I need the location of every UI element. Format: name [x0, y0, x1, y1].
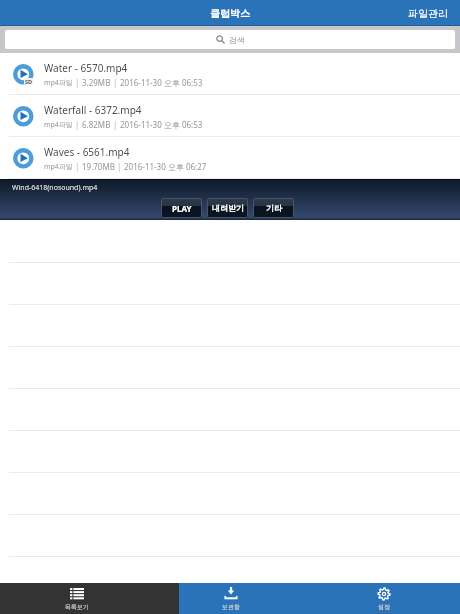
button[interactable]: 설정	[307, 583, 460, 614]
staticText: mp4파일	[44, 120, 73, 130]
staticText: |	[73, 161, 82, 172]
staticText: 목록보기	[65, 603, 89, 611]
staticText: 클럽박스	[210, 7, 250, 20]
staticText: 2016-11-30 오후 06:53	[120, 77, 203, 88]
button[interactable]: Waves - 6561.mp4	[0, 137, 460, 179]
staticText: 19.70MB	[82, 161, 115, 172]
button[interactable]: 파일관리	[396, 0, 460, 26]
staticText: 내려받기	[212, 203, 244, 213]
staticText: |	[111, 119, 120, 130]
staticText: 2016-11-30 오후 06:27	[124, 161, 207, 172]
staticText: PLAY	[172, 203, 192, 214]
staticText: mp4파일	[44, 78, 73, 88]
staticText: 파일관리	[408, 7, 448, 20]
button[interactable]: SD	[0, 53, 460, 95]
staticText: 보관함	[222, 603, 240, 611]
staticText: SD	[25, 78, 33, 84]
staticText: mp4파일	[44, 162, 73, 172]
button[interactable]: 기타	[253, 198, 294, 218]
staticText: Wind-6418(nosound).mp4	[12, 183, 98, 193]
button[interactable]: Waterfall - 6372.mp4	[0, 95, 460, 137]
staticText: 기타	[266, 203, 282, 213]
button[interactable]: 검색	[5, 30, 455, 49]
staticText: 검색	[229, 35, 245, 45]
staticText: Waterfall - 6372.mp4	[44, 103, 142, 117]
button[interactable]: 목록보기	[0, 583, 154, 614]
staticText: |	[115, 161, 124, 172]
button[interactable]: PLAY	[161, 198, 202, 218]
button[interactable]: 내려받기	[207, 198, 248, 218]
staticText: 설정	[378, 603, 390, 611]
staticText: |	[73, 77, 82, 88]
button[interactable]: 보관함	[154, 583, 307, 614]
staticText: 3.29MB	[82, 77, 111, 88]
staticText: |	[73, 119, 82, 130]
staticText: Waves - 6561.mp4	[44, 145, 130, 159]
staticText: |	[111, 77, 120, 88]
staticText: Water - 6570.mp4	[44, 61, 128, 75]
staticText: 2016-11-30 오후 06:53	[120, 119, 203, 130]
staticText: 6.82MB	[82, 119, 111, 130]
